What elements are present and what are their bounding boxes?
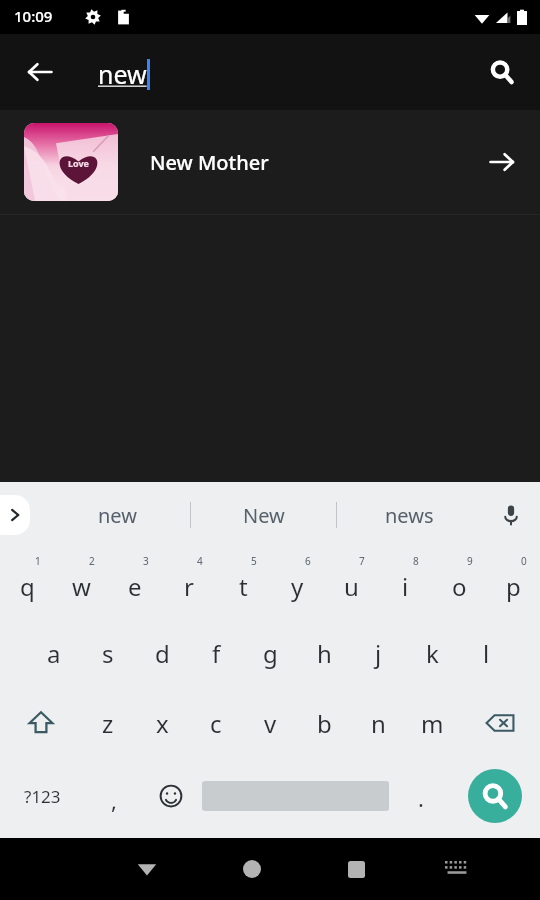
button[interactable]: y (270, 548, 324, 618)
button[interactable]: new (44, 482, 190, 548)
button[interactable]: l (459, 618, 513, 688)
staticText: y (291, 570, 304, 603)
button[interactable]: x (135, 688, 189, 758)
button[interactable]: t (216, 548, 270, 618)
staticText: s (102, 637, 114, 670)
staticText: x (156, 707, 169, 740)
staticText: 8 (413, 554, 419, 568)
button[interactable]: Voice input (482, 482, 540, 548)
staticText: n (371, 707, 386, 740)
button[interactable]: j (351, 618, 405, 688)
staticText: 4 (197, 554, 203, 568)
staticText: l (483, 637, 490, 670)
staticText: news (385, 502, 434, 529)
button[interactable]: s (81, 618, 135, 688)
staticText: 5 (251, 554, 257, 568)
button[interactable]: Search (468, 769, 522, 823)
button[interactable]: i (378, 548, 432, 618)
button[interactable]: z (81, 688, 135, 758)
button[interactable]: Recent apps (329, 842, 383, 896)
button[interactable]: v (243, 688, 297, 758)
staticText: u (344, 570, 359, 603)
staticText: p (506, 570, 521, 603)
staticText: New (243, 502, 285, 529)
staticText: h (317, 637, 332, 670)
button[interactable]: news (337, 482, 482, 548)
staticText: 9 (467, 554, 473, 568)
staticText: Love (68, 157, 89, 169)
staticText: 1 (35, 554, 41, 568)
staticText: New Mother (150, 149, 269, 176)
button[interactable]: d (135, 618, 189, 688)
staticText: r (184, 570, 194, 603)
staticText: f (212, 637, 221, 670)
button[interactable]: Search (478, 48, 526, 96)
staticText: b (317, 707, 332, 740)
staticText: new (98, 502, 137, 529)
button[interactable]: New (191, 482, 336, 548)
button[interactable]: o (432, 548, 486, 618)
button[interactable]: More suggestions (0, 495, 30, 535)
staticText: i (402, 570, 409, 603)
staticText: new (98, 57, 147, 91)
staticText: 10:09 (14, 6, 53, 26)
staticText: o (452, 570, 467, 603)
button[interactable]: Love (0, 110, 540, 214)
button[interactable]: k (405, 618, 459, 688)
staticText: k (426, 637, 439, 670)
button[interactable]: Back (16, 48, 64, 96)
button[interactable]: , (85, 758, 142, 834)
button[interactable]: Open New Mother (478, 138, 526, 186)
staticText: ?123 (24, 785, 61, 808)
staticText: w (72, 570, 91, 603)
staticText: v (264, 707, 277, 740)
button[interactable]: c (189, 688, 243, 758)
staticText: q (20, 570, 35, 603)
button[interactable]: r (162, 548, 216, 618)
button[interactable]: Space (199, 758, 392, 834)
button[interactable]: a (27, 618, 81, 688)
staticText: d (155, 637, 170, 670)
staticText: 0 (521, 554, 527, 568)
staticText: z (102, 707, 114, 740)
button[interactable]: p (486, 548, 540, 618)
button[interactable]: Home (225, 842, 279, 896)
button[interactable]: Shift (0, 688, 81, 758)
staticText: c (210, 707, 222, 740)
staticText: 3 (143, 554, 149, 568)
staticText: j (375, 637, 382, 670)
staticText: a (47, 637, 61, 670)
staticText: m (421, 707, 444, 740)
button[interactable]: Backspace (459, 688, 540, 758)
button[interactable]: ?123 (0, 758, 85, 834)
button[interactable]: w (54, 548, 108, 618)
button[interactable]: b (297, 688, 351, 758)
button[interactable]: Switch keyboard (434, 846, 480, 892)
staticText: , (111, 785, 117, 815)
button[interactable]: . (392, 758, 449, 834)
button[interactable]: u (324, 548, 378, 618)
staticText: g (263, 637, 278, 670)
button[interactable]: f (189, 618, 243, 688)
button[interactable]: m (405, 688, 459, 758)
button[interactable]: e (108, 548, 162, 618)
button[interactable]: Back (120, 842, 174, 896)
button[interactable]: Emoji (142, 758, 199, 834)
staticText: 2 (89, 554, 95, 568)
staticText: t (239, 570, 248, 603)
button[interactable]: q (0, 548, 54, 618)
button[interactable]: n (351, 688, 405, 758)
button[interactable]: h (297, 618, 351, 688)
staticText: 7 (359, 554, 365, 568)
button[interactable]: g (243, 618, 297, 688)
staticText: . (418, 783, 424, 813)
staticText: e (128, 570, 142, 603)
staticText: 6 (305, 554, 311, 568)
